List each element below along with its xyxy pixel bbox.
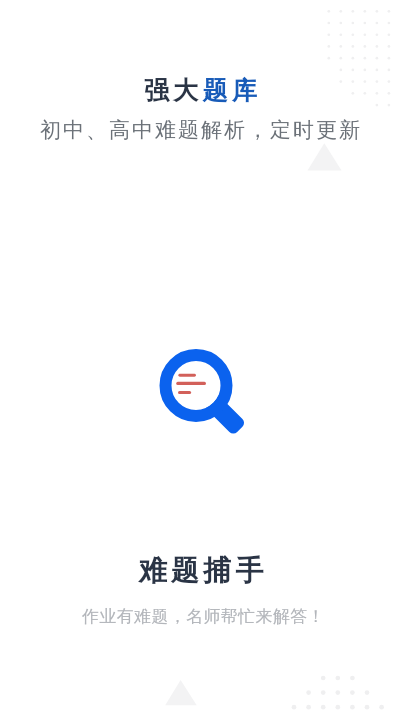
staticText: 难题捕手: [138, 553, 268, 588]
staticText: 强大题库: [144, 75, 261, 106]
button[interactable]: 难题捕手 搜题: [155, 344, 239, 428]
staticText: 作业有难题，名师帮忙来解答！: [82, 606, 325, 627]
staticText: 初中、高中难题解析，定时更新: [39, 117, 361, 143]
